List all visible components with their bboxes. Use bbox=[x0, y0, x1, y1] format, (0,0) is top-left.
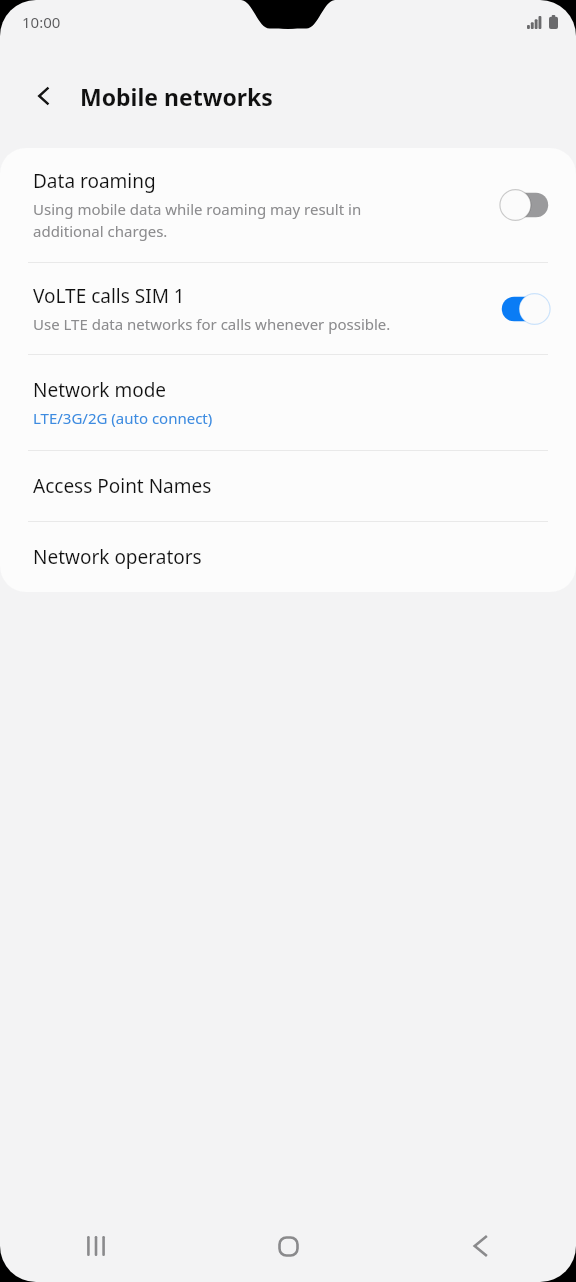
staticText: Network mode bbox=[33, 377, 167, 403]
staticText: Network operators bbox=[33, 544, 202, 570]
button[interactable]: Network mode bbox=[0, 355, 576, 450]
staticText: 10:00 bbox=[22, 12, 61, 32]
button[interactable]: Network operators bbox=[0, 522, 576, 592]
button[interactable]: Home bbox=[192, 1210, 384, 1282]
button[interactable]: Back bbox=[384, 1210, 576, 1282]
button[interactable]: Access Point Names bbox=[0, 451, 576, 521]
staticText: LTE/3G/2G (auto connect) bbox=[33, 408, 213, 428]
staticText: Mobile networks bbox=[80, 81, 273, 112]
button[interactable]: Off bbox=[498, 188, 552, 222]
button[interactable]: Recents bbox=[0, 1210, 192, 1282]
button[interactable]: Data roaming bbox=[0, 148, 576, 262]
staticText: Using mobile data while roaming may resu… bbox=[33, 199, 362, 242]
button[interactable]: VoLTE calls SIM 1 bbox=[0, 263, 576, 354]
staticText: Data roaming bbox=[33, 168, 156, 194]
staticText: Use LTE data networks for calls whenever… bbox=[33, 314, 391, 334]
staticText: Access Point Names bbox=[33, 473, 212, 499]
button[interactable]: Back bbox=[20, 72, 68, 120]
button[interactable]: On bbox=[498, 292, 552, 326]
staticText: VoLTE calls SIM 1 bbox=[33, 283, 185, 309]
